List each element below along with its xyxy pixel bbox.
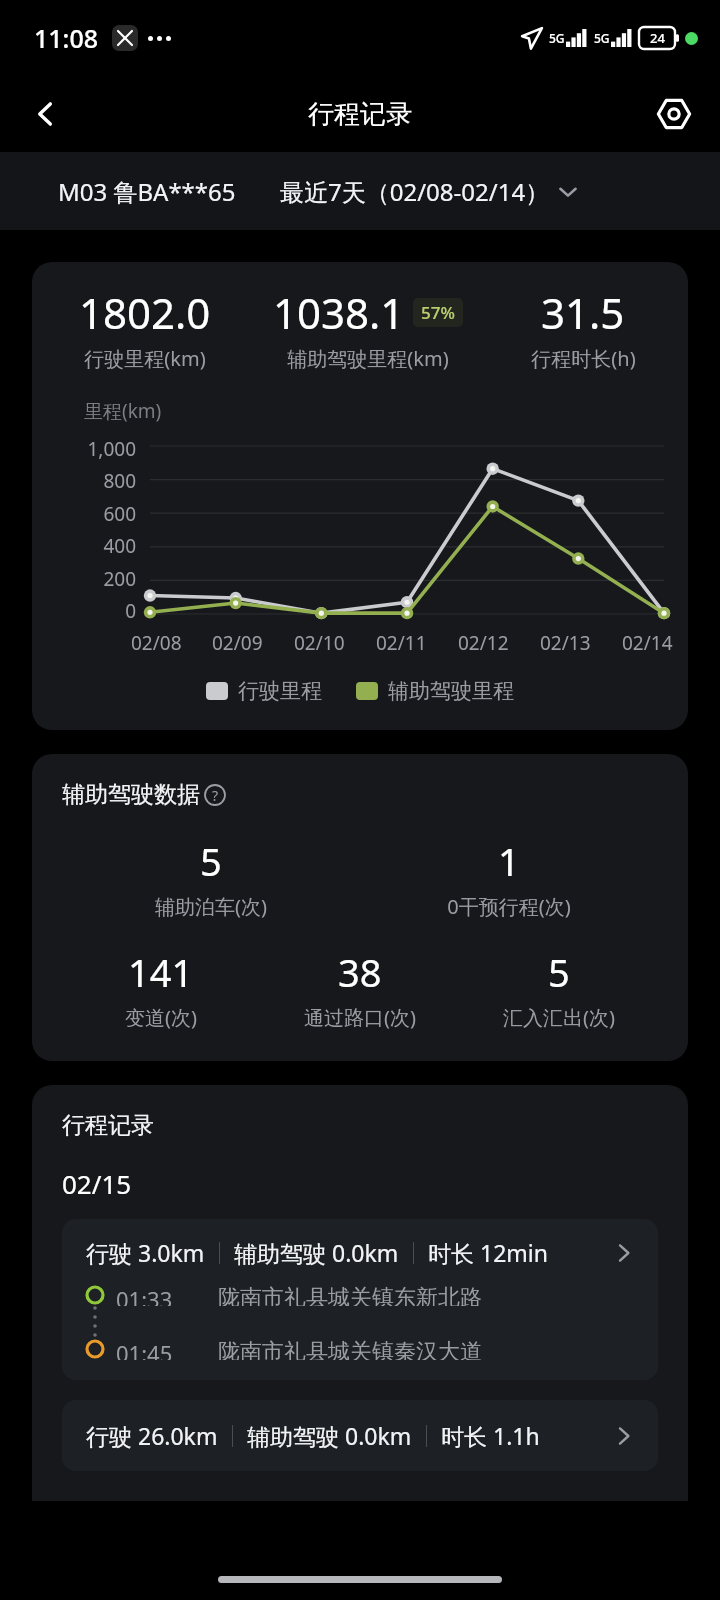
button[interactable]: Settings	[646, 86, 702, 142]
staticText: 辅助驾驶数据	[62, 780, 200, 809]
button[interactable]: Help	[204, 784, 226, 806]
button[interactable]: 行驶 3.0km	[62, 1219, 658, 1380]
button[interactable]: Back	[18, 86, 74, 142]
staticText: 时长 1.1h	[441, 1420, 540, 1451]
staticText: 5	[548, 946, 570, 998]
staticText: 辅助驾驶里程	[388, 678, 514, 704]
staticText: 行驶 3.0km	[86, 1237, 205, 1268]
staticText: 02/10	[294, 630, 345, 656]
staticText: 400	[62, 533, 136, 559]
staticText: 时长 12min	[428, 1237, 548, 1268]
staticText: 01:45	[116, 1338, 208, 1360]
staticText: 31.5	[541, 284, 625, 341]
staticText: 通过路口(次)	[304, 1004, 416, 1031]
button[interactable]: 行驶 26.0km	[62, 1400, 658, 1471]
staticText: 1	[498, 835, 520, 887]
staticText: 行驶里程	[238, 678, 322, 704]
staticText: 1038.1	[273, 284, 405, 341]
staticText: 辅助驾驶 0.0km	[234, 1237, 399, 1268]
staticText: 行程时长(h)	[531, 345, 636, 372]
staticText: 陇南市礼县城关镇秦汉大道	[218, 1338, 482, 1360]
staticText: 0	[62, 598, 136, 624]
staticText: 辅助驾驶 0.0km	[247, 1420, 412, 1451]
staticText: 24	[650, 29, 665, 47]
staticText: 5G	[549, 30, 565, 46]
staticText: 38	[338, 946, 382, 998]
staticText: 02/13	[540, 630, 591, 656]
staticText: 1,000	[62, 436, 136, 462]
staticText: 11:08	[34, 21, 99, 55]
staticText: 02/15	[62, 1166, 132, 1201]
staticText: 变道(次)	[125, 1004, 197, 1031]
staticText: 02/14	[622, 630, 673, 656]
button[interactable]: M03 鲁BA***65	[58, 175, 236, 208]
staticText: 141	[128, 946, 194, 998]
staticText: 行驶 26.0km	[86, 1420, 218, 1451]
staticText: 600	[62, 501, 136, 527]
staticText: 行程记录	[62, 1111, 154, 1140]
button[interactable]: 最近7天（02/08-02/14）	[280, 175, 578, 208]
staticText: 陇南市礼县城关镇东新北路	[218, 1284, 482, 1306]
staticText: 5G	[594, 30, 610, 46]
staticText: 02/09	[212, 630, 263, 656]
staticText: 02/12	[458, 630, 509, 656]
staticText: M03 鲁BA***65	[58, 175, 236, 208]
staticText: 1802.0	[79, 284, 211, 341]
staticText: ?	[212, 786, 219, 805]
staticText: 800	[62, 468, 136, 494]
staticText: 02/08	[131, 630, 182, 656]
staticText: 最近7天（02/08-02/14）	[280, 175, 550, 208]
staticText: 汇入汇出(次)	[503, 1004, 615, 1031]
staticText: 里程(km)	[84, 398, 162, 424]
staticText: 02/11	[376, 630, 427, 656]
staticText: 5	[200, 835, 222, 887]
staticText: 0干预行程(次)	[447, 893, 571, 920]
staticText: 57%	[421, 301, 455, 324]
staticText: 行驶里程(km)	[84, 345, 206, 372]
staticText: 辅助驾驶里程(km)	[287, 345, 449, 372]
staticText: 辅助泊车(次)	[155, 893, 267, 920]
staticText: 01:33	[116, 1284, 208, 1306]
staticText: 200	[62, 566, 136, 592]
staticText: 行程记录	[308, 98, 412, 131]
